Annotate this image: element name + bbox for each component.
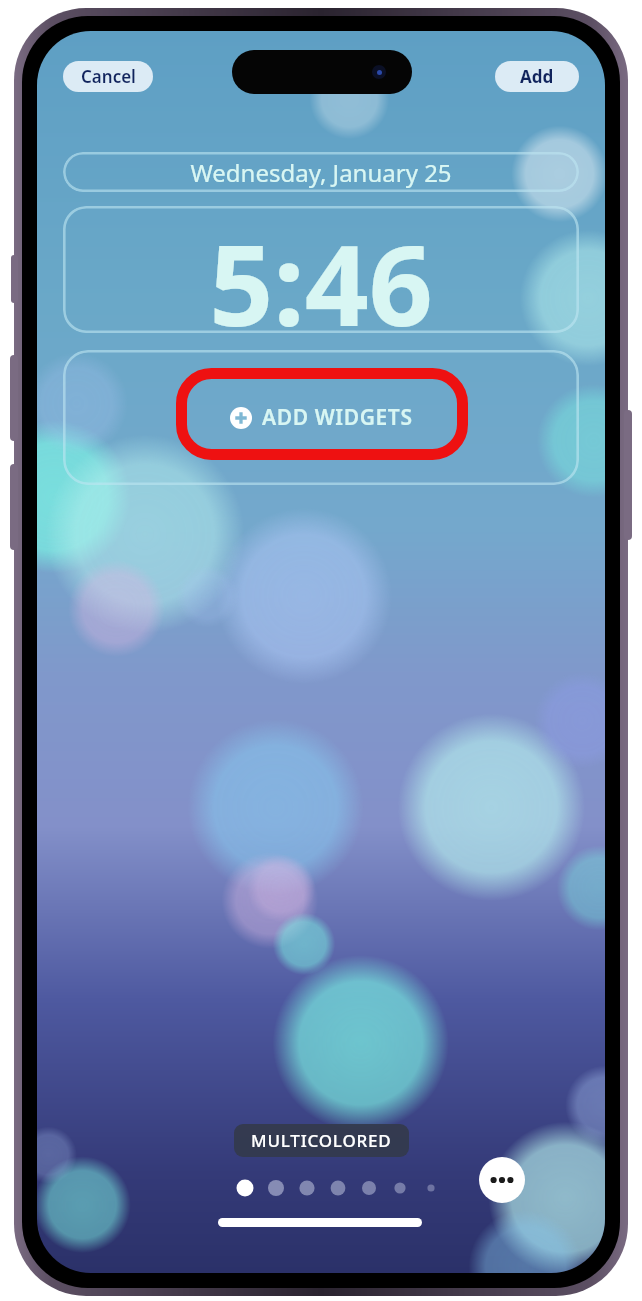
staticText: Cancel: [81, 65, 136, 88]
button[interactable]: MULTICOLORED: [234, 1124, 409, 1157]
staticText: ADD WIDGETS: [262, 403, 413, 432]
staticText: Wednesday, January 25: [190, 156, 452, 189]
button[interactable]: Add: [495, 61, 579, 92]
button[interactable]: Cancel: [63, 61, 153, 92]
button[interactable]: ADD WIDGETS: [63, 350, 579, 485]
button[interactable]: 5:46: [63, 206, 579, 333]
button[interactable]: More options: [479, 1157, 525, 1203]
button[interactable]: ADD WIDGETS: [212, 393, 431, 442]
staticText: Add: [520, 65, 554, 88]
staticText: MULTICOLORED: [251, 1129, 392, 1152]
button[interactable]: Wednesday, January 25: [63, 152, 579, 192]
staticText: 5:46: [209, 206, 433, 333]
